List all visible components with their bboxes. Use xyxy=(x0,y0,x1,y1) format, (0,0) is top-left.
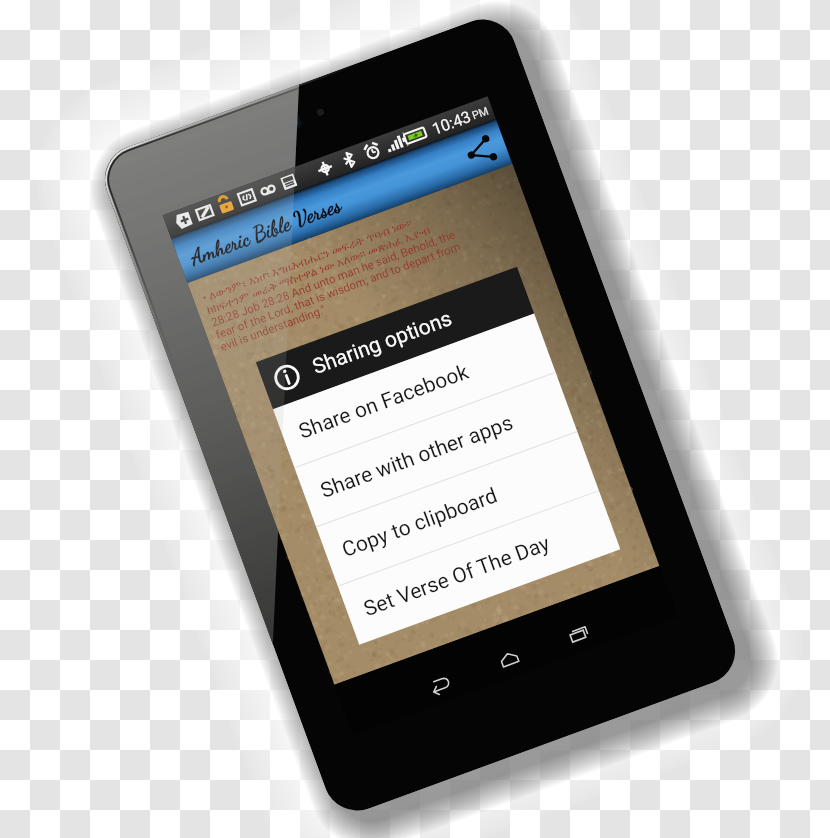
staticText: Share on Facebook xyxy=(295,360,472,445)
staticText: ከክፍተንም መራቅ ማስተዋል ነው አለው፡፡ መጽሐፈ ኢዮብ xyxy=(205,223,432,316)
staticText: Share with other apps xyxy=(317,410,516,504)
staticText: 28:28 Job 28:28 And unto man he said, Be… xyxy=(209,227,457,329)
button[interactable]: Back xyxy=(410,660,470,709)
button[interactable]: Copy to clipboard xyxy=(316,432,599,586)
staticText: PM xyxy=(470,104,491,122)
button[interactable]: Share on Facebook xyxy=(273,314,555,467)
staticText: evil is understanding." xyxy=(218,303,327,353)
staticText: Amheric Bible Verses xyxy=(187,192,345,270)
button[interactable]: Share xyxy=(457,127,503,173)
button[interactable]: Home xyxy=(479,634,540,684)
staticText: Set Verse Of The Day xyxy=(360,531,554,622)
button[interactable]: Share with other apps xyxy=(295,373,577,527)
staticText: Copy to clipboard xyxy=(339,483,501,563)
staticText: Sharing options xyxy=(309,306,456,380)
staticText: 10:43 xyxy=(429,107,474,139)
staticText: • ለውንም፣ እነሆ፡ እግዜአብሔርን መፍራት ጥባብ ነው። xyxy=(200,215,414,304)
button[interactable]: Set Verse Of The Day xyxy=(338,491,620,645)
staticText: fear of the Lord, that is wisdom; and to… xyxy=(214,239,462,341)
button[interactable]: Recent apps xyxy=(549,609,609,659)
